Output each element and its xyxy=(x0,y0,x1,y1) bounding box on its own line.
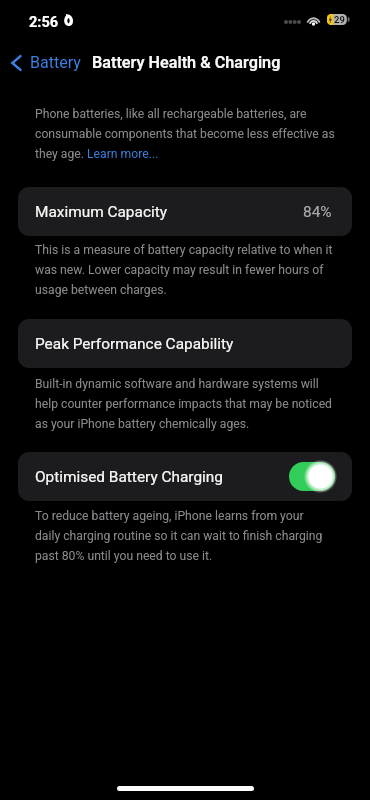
button[interactable]: Optimised Battery Charging xyxy=(18,452,352,501)
staticText: Battery Health & Charging xyxy=(92,53,281,72)
staticText: Optimised Battery Charging xyxy=(35,468,223,486)
staticText: Peak Performance Capability xyxy=(35,335,234,353)
button[interactable]: Maximum Capacity xyxy=(18,187,352,236)
staticText: 2:56 xyxy=(29,13,59,30)
staticText: 84% xyxy=(303,203,332,221)
button[interactable]: Peak Performance Capability xyxy=(18,319,352,368)
staticText: Battery xyxy=(30,53,81,72)
staticText: This is a measure of battery capacity re… xyxy=(35,238,333,298)
staticText: Maximum Capacity xyxy=(35,203,168,221)
button[interactable]: Battery xyxy=(9,53,81,72)
staticText: 29 xyxy=(334,14,345,25)
staticText: Phone batteries, like all rechargeable b… xyxy=(35,102,335,162)
staticText: To reduce battery ageing, iPhone learns … xyxy=(35,504,323,564)
staticText: Built-in dynamic software and hardware s… xyxy=(35,372,332,432)
button[interactable]: Optimised Battery Charging xyxy=(289,462,335,491)
